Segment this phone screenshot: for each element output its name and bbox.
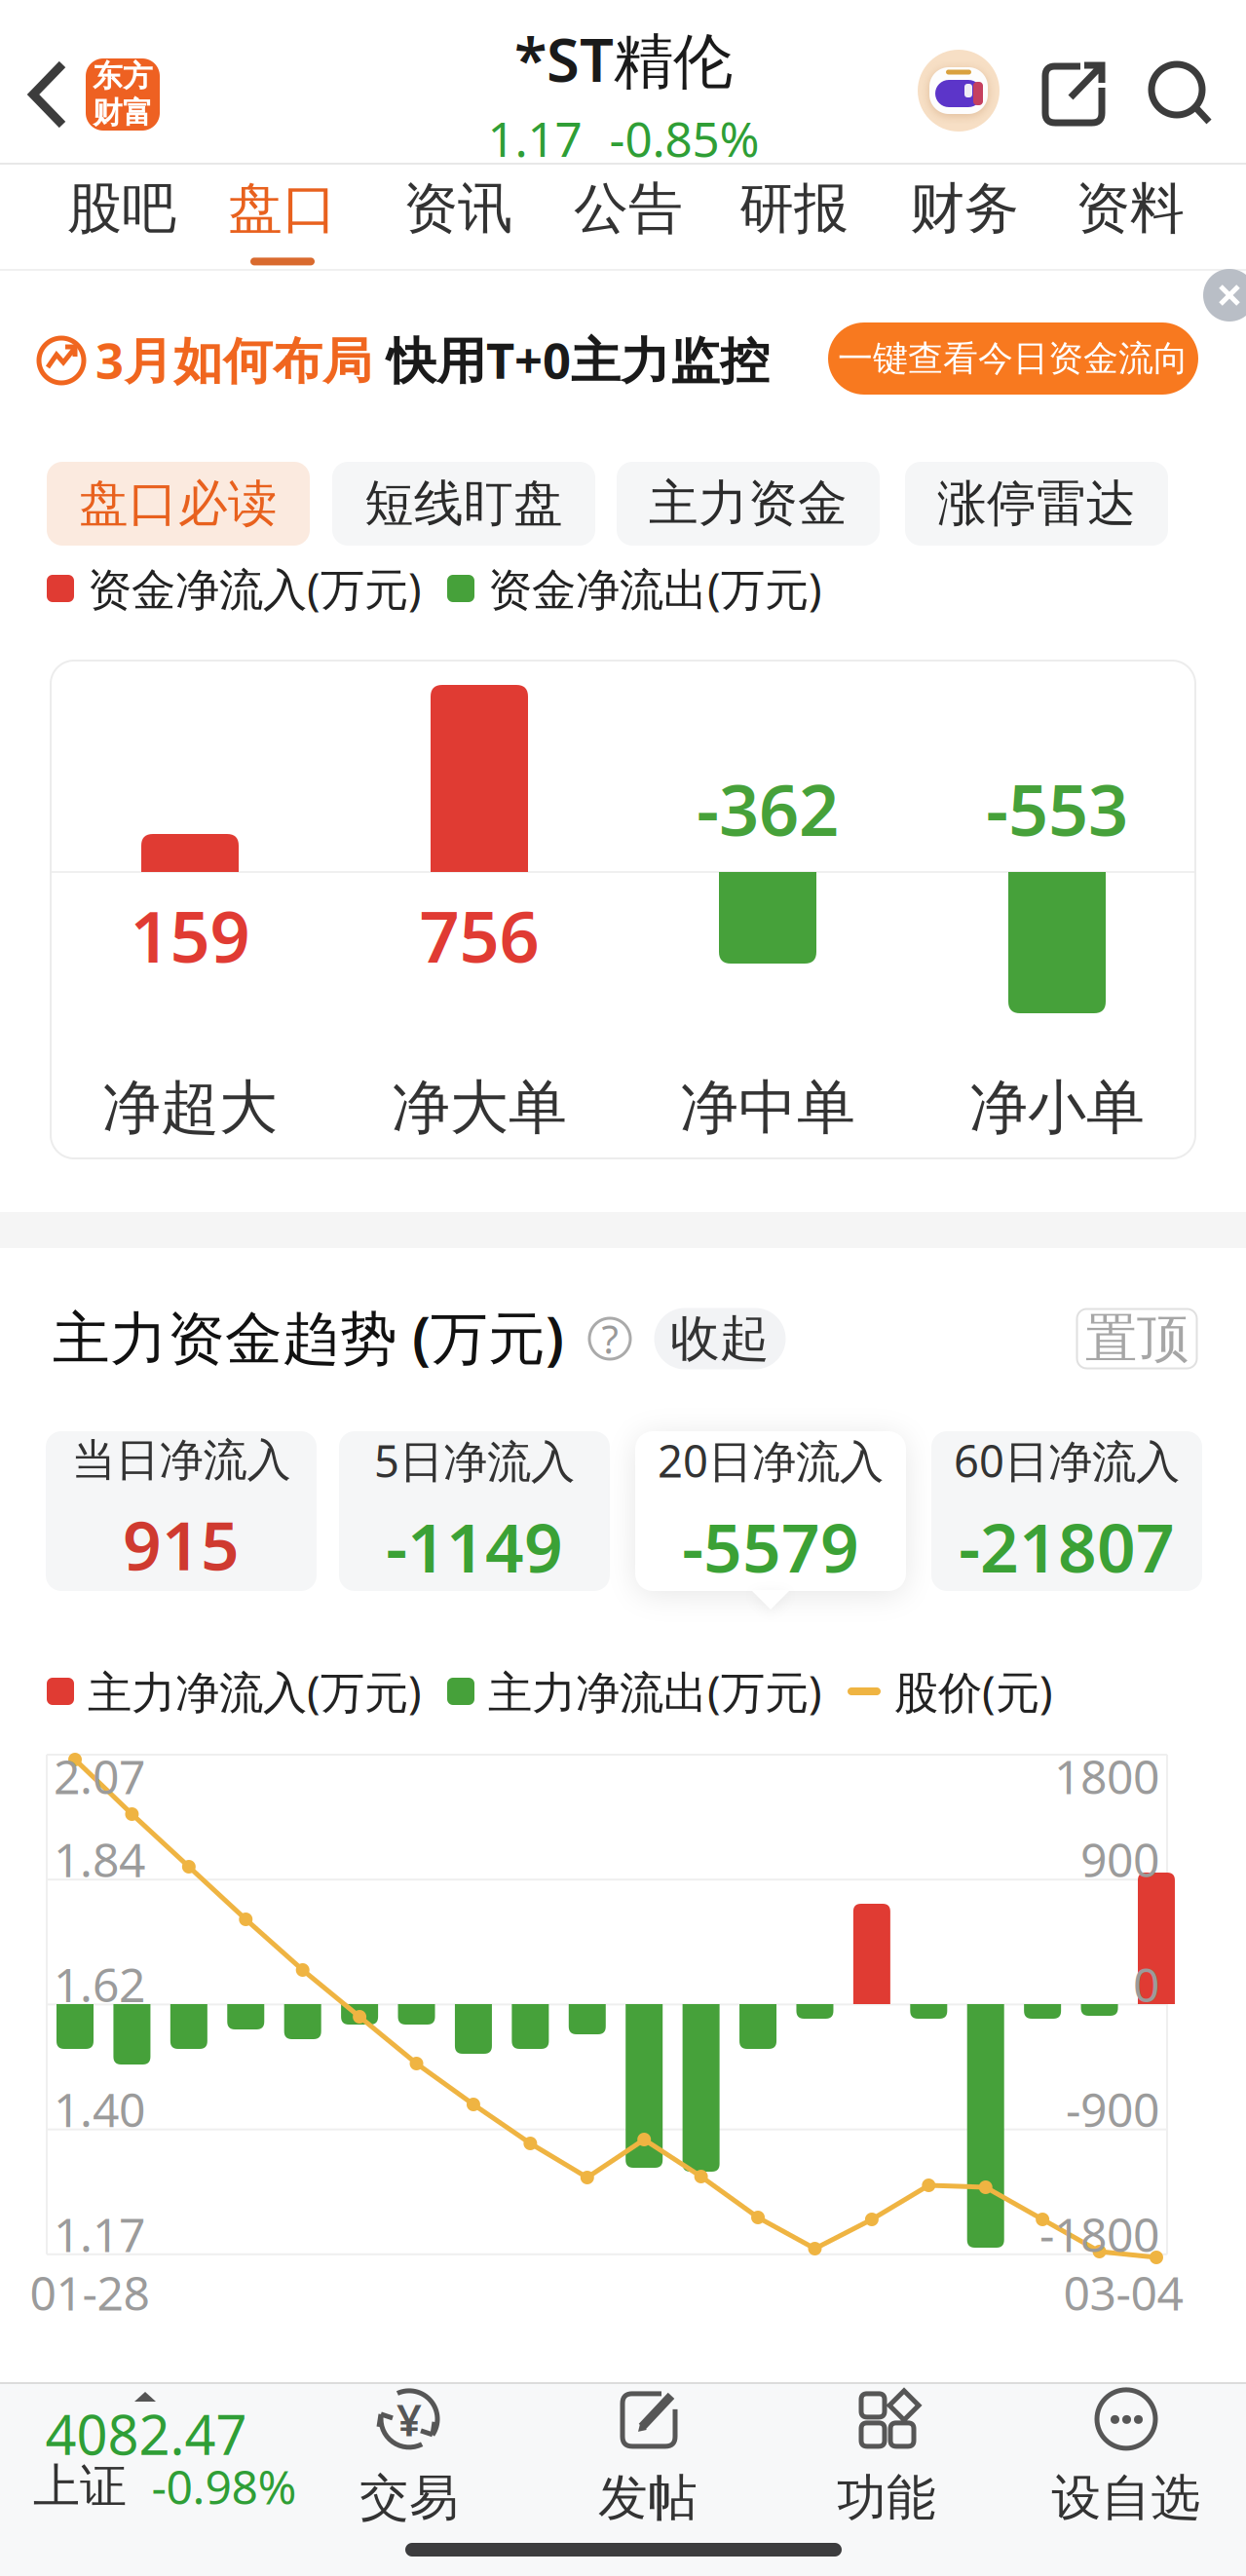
staticText: -0.85%	[609, 106, 759, 170]
staticText: 159	[130, 889, 250, 982]
staticText: 915	[123, 1499, 240, 1589]
staticText: 交易	[359, 2468, 459, 2528]
staticText: 快用T+0主力监控	[372, 327, 770, 392]
button[interactable]: 盘口必读	[47, 462, 310, 546]
button[interactable]: 东方财富	[86, 58, 160, 131]
staticText: 900	[1080, 1828, 1159, 1890]
staticText: 涨停雷达	[937, 473, 1136, 534]
staticText: 1.84	[54, 1828, 145, 1890]
staticText: 主力净流出(万元)	[488, 1662, 822, 1721]
staticText: 置顶	[1085, 1307, 1189, 1371]
staticText: 1.40	[54, 2078, 145, 2140]
staticText: 3月如何布局	[95, 327, 372, 392]
staticText: 净大单	[392, 1072, 567, 1144]
staticText: 0	[1133, 1953, 1159, 2015]
staticText: 01-28	[30, 2261, 150, 2323]
staticText: ¥	[396, 2390, 422, 2448]
staticText: -21807	[959, 1501, 1175, 1591]
button[interactable]: 收起	[654, 1308, 786, 1369]
button[interactable]: 发帖	[541, 2372, 755, 2538]
staticText: 功能	[837, 2468, 936, 2528]
staticText: 主力净流入(万元)	[88, 1662, 422, 1721]
button[interactable]: ¥	[302, 2372, 516, 2538]
staticText: -900	[1066, 2078, 1159, 2140]
staticText: 一键查看今日资金流向	[838, 337, 1189, 380]
staticText: ?	[602, 1313, 618, 1364]
staticText: 设自选	[1052, 2468, 1201, 2528]
staticText: 2.07	[54, 1745, 145, 1807]
staticText: 5日净流入	[374, 1431, 575, 1490]
staticText: 1800	[1054, 1745, 1159, 1807]
staticText: 短线盯盘	[364, 473, 563, 534]
button[interactable]: 财务	[887, 175, 1042, 265]
button[interactable]: 5日净流入	[339, 1431, 610, 1591]
staticText: 资料	[1076, 175, 1185, 242]
button[interactable]: 主力资金	[617, 462, 880, 546]
button[interactable]: 研报	[716, 175, 872, 265]
staticText: -1800	[1039, 2203, 1159, 2265]
staticText: 股价(元)	[894, 1662, 1053, 1721]
staticText: 上证	[33, 2458, 127, 2515]
button[interactable]: 公告	[550, 175, 706, 265]
staticText: 研报	[739, 175, 849, 242]
staticText: 1.17	[54, 2203, 145, 2265]
staticText: *ST精伦	[514, 19, 733, 99]
staticText: 60日净流入	[954, 1431, 1180, 1490]
staticText: -362	[697, 762, 839, 855]
staticText: 03-04	[1063, 2261, 1183, 2323]
button[interactable]: 4082.47	[0, 2383, 292, 2576]
button[interactable]: 资讯	[380, 175, 536, 265]
button[interactable]: Search	[1149, 61, 1213, 126]
button[interactable]: 股吧	[44, 175, 200, 265]
staticText: 资金净流入(万元)	[88, 559, 422, 618]
staticText: 财富	[93, 95, 153, 131]
staticText: 主力资金	[649, 473, 848, 534]
staticText: 净超大	[102, 1072, 278, 1144]
staticText: -0.98%	[151, 2455, 297, 2517]
button[interactable]: Back	[0, 0, 95, 189]
staticText: 资讯	[403, 175, 512, 242]
staticText: 当日净流入	[72, 1433, 291, 1488]
button[interactable]: Close	[1203, 269, 1246, 322]
button[interactable]: Share	[1041, 62, 1106, 127]
staticText: -553	[986, 762, 1128, 855]
staticText: 股吧	[67, 175, 176, 242]
staticText: 1.62	[54, 1953, 145, 2015]
staticText: 资金净流出(万元)	[488, 559, 822, 618]
button[interactable]: 一键查看今日资金流向	[828, 322, 1198, 395]
staticText: 盘口	[228, 175, 337, 242]
staticText: 净小单	[969, 1072, 1145, 1144]
staticText: -5579	[682, 1501, 859, 1591]
button[interactable]: 置顶	[1076, 1308, 1198, 1369]
button[interactable]: 当日净流入	[46, 1431, 317, 1591]
button[interactable]: 盘口	[205, 175, 360, 265]
button[interactable]: 资料	[1052, 175, 1208, 265]
staticText: 净中单	[680, 1072, 855, 1144]
button[interactable]: 设自选	[1019, 2372, 1233, 2538]
button[interactable]: 20日净流入	[635, 1431, 906, 1591]
staticText: 收起	[670, 1308, 770, 1369]
staticText: 4082.47	[45, 2398, 247, 2470]
staticText: 20日净流入	[658, 1431, 884, 1490]
staticText: 盘口必读	[79, 473, 278, 534]
staticText: 东方	[93, 58, 153, 95]
button[interactable]: Assistant	[918, 50, 1000, 132]
staticText: -1149	[386, 1501, 563, 1591]
staticText: 756	[419, 889, 539, 982]
staticText: 1.17	[488, 106, 582, 170]
staticText: 财务	[910, 175, 1019, 242]
staticText: 公告	[574, 175, 683, 242]
button[interactable]: Help	[589, 1318, 630, 1359]
staticText: 发帖	[598, 2468, 698, 2528]
button[interactable]: 60日净流入	[931, 1431, 1202, 1591]
button[interactable]: 功能	[779, 2372, 994, 2538]
staticText: 主力资金趋势 (万元)	[53, 1299, 564, 1375]
button[interactable]: 短线盯盘	[332, 462, 595, 546]
button[interactable]: 涨停雷达	[905, 462, 1168, 546]
